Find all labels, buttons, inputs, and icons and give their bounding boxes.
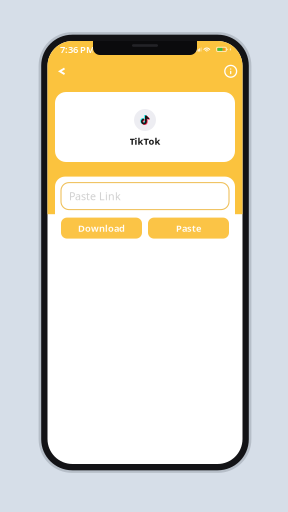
staticText: 7:36 PM | 0.2 xyxy=(60,43,117,56)
staticText: Download xyxy=(78,222,125,234)
staticText: TikTok xyxy=(129,135,160,147)
staticText: Paste Link xyxy=(69,189,121,203)
button[interactable]: Information xyxy=(216,59,242,83)
button[interactable]: Paste xyxy=(148,218,229,239)
staticText: Paste xyxy=(176,222,201,234)
button[interactable]: Back xyxy=(47,59,75,83)
button[interactable]: Download xyxy=(61,218,142,239)
